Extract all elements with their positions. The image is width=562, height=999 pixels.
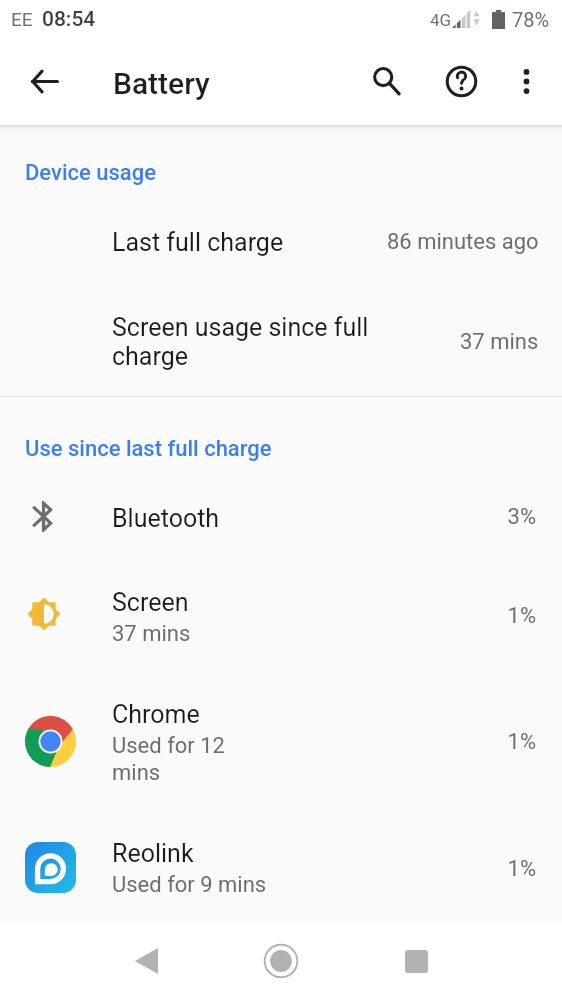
- staticText: Bluetooth: [112, 504, 220, 533]
- staticText: Battery: [113, 66, 210, 101]
- button[interactable]: Last full charge: [0, 206, 562, 278]
- staticText: 37 mins: [112, 621, 191, 647]
- staticText: 78%: [512, 8, 550, 31]
- staticText: 37 mins: [460, 329, 539, 355]
- staticText: Use since last full charge: [25, 436, 272, 462]
- staticText: Chrome: [112, 700, 200, 729]
- button[interactable]: [0, 558, 562, 668]
- staticText: 86 minutes ago: [387, 229, 539, 255]
- staticText: 1%: [0, 729, 536, 755]
- button[interactable]: [0, 800, 562, 910]
- button[interactable]: [0, 668, 562, 800]
- staticText: 3%: [0, 504, 536, 530]
- button[interactable]: Back: [101, 936, 191, 986]
- button[interactable]: Navigate up: [15, 47, 73, 115]
- button[interactable]: Help: [433, 47, 489, 115]
- button[interactable]: More options: [503, 47, 550, 115]
- staticText: Used for 9 mins: [112, 872, 267, 898]
- staticText: 1%: [0, 856, 536, 882]
- staticText: 08:54: [42, 7, 96, 32]
- staticText: 4G: [430, 10, 452, 30]
- button[interactable]: Home: [236, 936, 326, 986]
- staticText: Device usage: [25, 160, 156, 186]
- staticText: EE: [11, 8, 33, 30]
- staticText: Used for 12 mins: [112, 733, 225, 786]
- button[interactable]: Recent apps: [371, 936, 461, 986]
- staticText: 1%: [0, 603, 536, 629]
- staticText: Reolink: [112, 839, 194, 868]
- staticText: Screen: [112, 588, 189, 617]
- button[interactable]: Search: [358, 47, 414, 115]
- staticText: Last full charge: [112, 228, 284, 257]
- button[interactable]: Screen usage since full charge: [0, 299, 562, 385]
- button[interactable]: [0, 476, 562, 556]
- staticText: Screen usage since full charge: [112, 313, 372, 371]
